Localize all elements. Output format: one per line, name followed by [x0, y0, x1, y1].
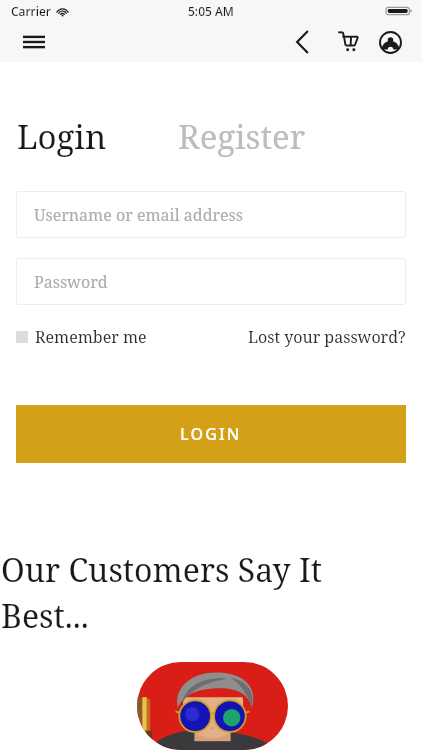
staticText: Username or email address [34, 204, 243, 226]
button[interactable]: Login [17, 114, 111, 159]
button[interactable]: Back [282, 22, 324, 62]
button[interactable]: Remember me [16, 326, 147, 348]
button[interactable]: Menu [14, 22, 54, 62]
button[interactable]: LOGIN [16, 405, 406, 463]
staticText: LOGIN [180, 423, 242, 445]
button[interactable]: Lost your password? [248, 326, 406, 348]
staticText: Remember me [35, 326, 147, 348]
button[interactable]: Cart [324, 22, 368, 62]
staticText: Login [17, 114, 107, 159]
staticText: Best... [1, 594, 89, 638]
staticText: Carrier [11, 3, 51, 19]
button[interactable]: Password [16, 258, 406, 305]
staticText: Lost your password? [248, 326, 406, 348]
staticText: Password [34, 271, 108, 293]
button[interactable]: Username or email address [16, 191, 406, 238]
staticText: Our Customers Say It [1, 548, 322, 592]
staticText: Register [178, 114, 306, 159]
button[interactable]: Account [368, 22, 412, 62]
button[interactable]: Register [178, 114, 306, 159]
staticText: 5:05 AM [188, 3, 234, 19]
